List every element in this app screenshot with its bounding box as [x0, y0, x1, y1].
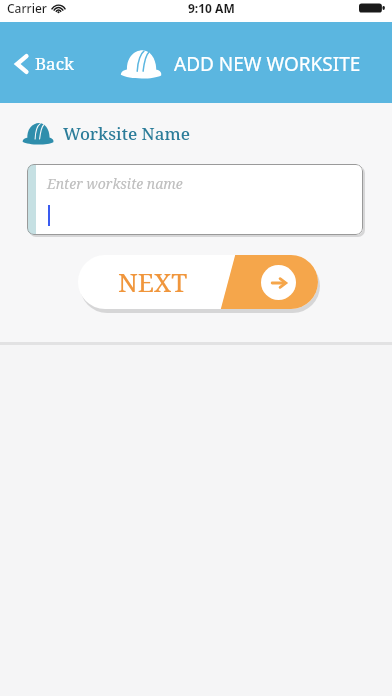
staticText: Worksite Name [63, 122, 190, 145]
other: Next [261, 265, 296, 300]
button[interactable]: Enter worksite name [27, 164, 363, 235]
staticText: Back [35, 52, 74, 75]
button[interactable]: NEXT [78, 255, 318, 309]
staticText: ADD NEW WORKSITE [174, 51, 361, 77]
staticText: Enter worksite name [47, 174, 183, 193]
staticText: Carrier [7, 0, 47, 16]
staticText: 9:10 AM [188, 0, 235, 16]
button[interactable]: Back [0, 44, 88, 83]
staticText: NEXT [118, 264, 188, 299]
